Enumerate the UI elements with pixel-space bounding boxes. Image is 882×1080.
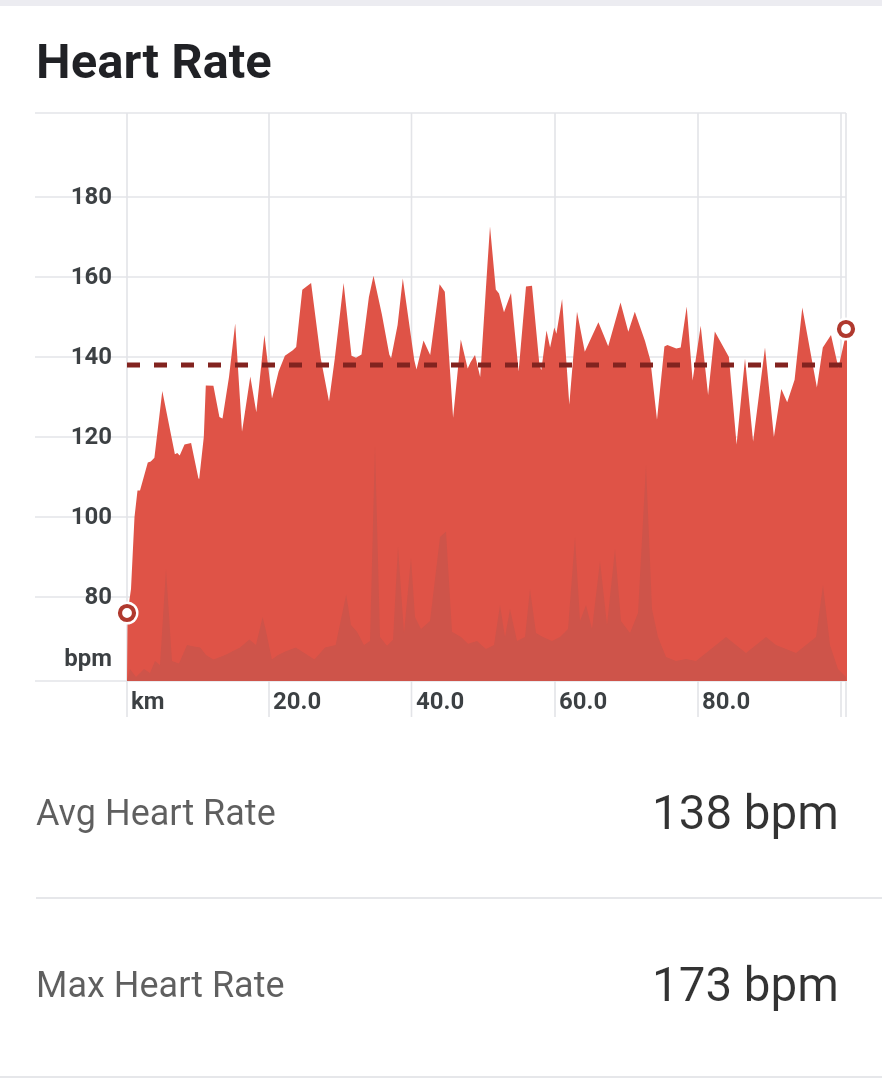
staticText: 40.0	[416, 687, 465, 715]
staticText: 160	[0, 262, 112, 290]
staticText: Avg Heart Rate	[36, 792, 276, 834]
button[interactable]: Avg Heart Rate	[0, 728, 882, 897]
staticText: 138 bpm	[652, 785, 839, 841]
staticText: 20.0	[273, 687, 322, 715]
staticText: 60.0	[559, 687, 608, 715]
staticText: 180	[0, 182, 112, 210]
button[interactable]: Max Heart Rate	[0, 899, 882, 1071]
staticText: 140	[0, 342, 112, 370]
staticText: 100	[0, 502, 112, 530]
staticText: 120	[0, 422, 112, 450]
staticText: Max Heart Rate	[36, 964, 285, 1006]
staticText: km	[131, 687, 165, 715]
staticText: 80.0	[702, 687, 751, 715]
staticText: Heart Rate	[36, 33, 272, 90]
staticText: 80	[0, 582, 112, 610]
staticText: bpm	[0, 644, 112, 672]
staticText: 173 bpm	[652, 957, 839, 1013]
